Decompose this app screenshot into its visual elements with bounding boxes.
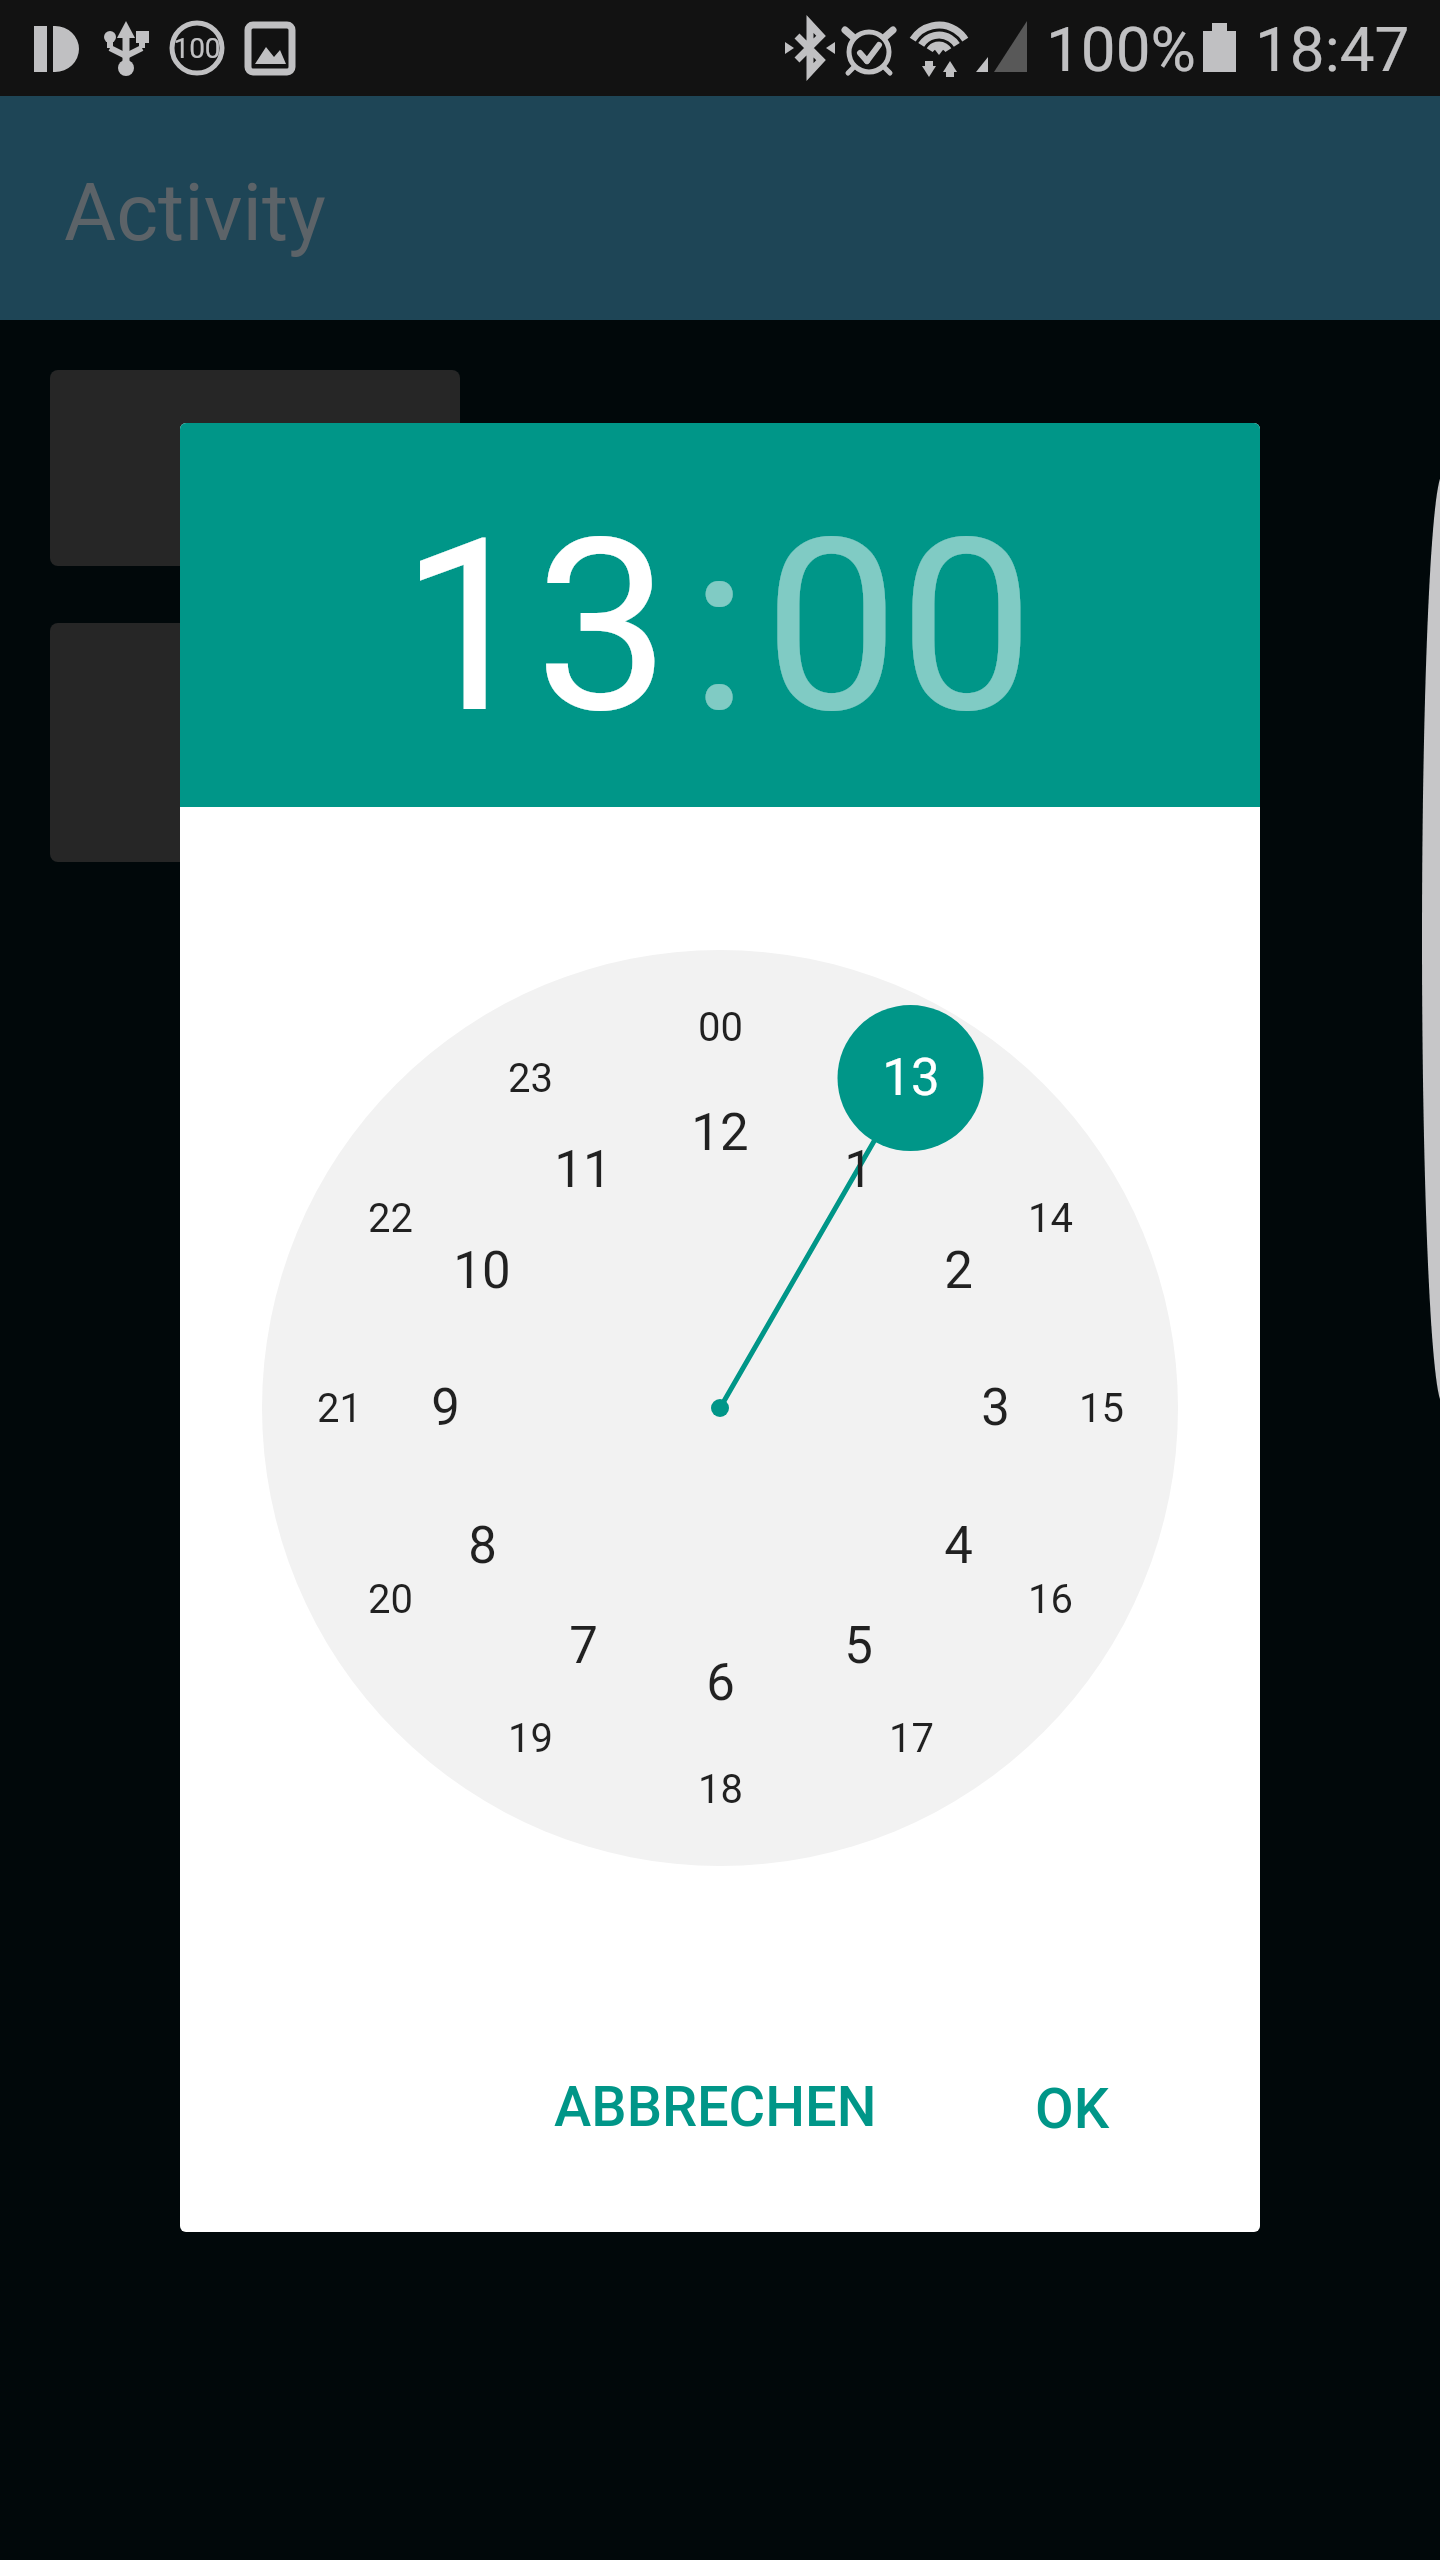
- button[interactable]: 7: [513, 1601, 653, 1691]
- staticText: OK: [1035, 2076, 1109, 2142]
- staticText: 18:47: [1255, 13, 1410, 86]
- staticText: :: [690, 486, 749, 767]
- button[interactable]: 00: [764, 486, 1034, 767]
- staticText: 6: [706, 1653, 735, 1713]
- staticText: 13: [882, 1048, 940, 1108]
- staticText: 00: [698, 1004, 743, 1051]
- staticText: 16: [1028, 1576, 1073, 1623]
- button[interactable]: 17: [841, 1693, 981, 1783]
- button[interactable]: 20: [320, 1554, 460, 1644]
- button[interactable]: ABBRECHEN: [526, 2059, 905, 2155]
- button[interactable]: 8: [412, 1501, 552, 1591]
- button[interactable]: 21: [269, 1363, 409, 1453]
- staticText: ABBRECHEN: [554, 2074, 877, 2140]
- staticText: 21: [317, 1385, 362, 1432]
- staticText: Activity: [64, 166, 326, 260]
- staticText: 100: [173, 32, 221, 65]
- staticText: 2: [944, 1241, 973, 1301]
- button[interactable]: OK: [1007, 2061, 1137, 2157]
- button[interactable]: 00: [650, 982, 790, 1072]
- button[interactable]: 4: [888, 1501, 1028, 1591]
- staticText: 1: [844, 1140, 873, 1200]
- button[interactable]: 14: [980, 1173, 1120, 1263]
- staticText: 9: [431, 1378, 460, 1438]
- staticText: 5: [844, 1616, 873, 1676]
- staticText: 7: [569, 1616, 598, 1676]
- staticText: 19: [508, 1715, 553, 1762]
- other: Scroll indicator: [1380, 470, 1440, 1410]
- staticText: 14: [1028, 1195, 1073, 1242]
- button[interactable]: [50, 370, 460, 566]
- staticText: 12: [691, 1103, 749, 1163]
- button[interactable]: 19: [460, 1693, 600, 1783]
- button[interactable]: [50, 623, 460, 862]
- button[interactable]: 18: [650, 1744, 790, 1834]
- button[interactable]: 16: [980, 1554, 1120, 1644]
- button[interactable]: 22: [320, 1173, 460, 1263]
- staticText: 100%: [1046, 13, 1196, 86]
- staticText: 4: [944, 1516, 973, 1576]
- button[interactable]: 6: [650, 1638, 790, 1728]
- staticText: 11: [554, 1140, 612, 1200]
- staticText: 17: [889, 1715, 934, 1762]
- staticText: 3: [981, 1378, 1010, 1438]
- staticText: 20: [368, 1576, 413, 1623]
- staticText: 8: [468, 1516, 497, 1576]
- staticText: 10: [453, 1241, 511, 1301]
- button[interactable]: 2: [888, 1226, 1028, 1316]
- button[interactable]: 12: [650, 1088, 790, 1178]
- staticText: 22: [368, 1195, 413, 1242]
- button[interactable]: 13: [400, 486, 670, 767]
- staticText: 15: [1079, 1385, 1124, 1432]
- button[interactable]: 23: [460, 1033, 600, 1123]
- staticText: 23: [508, 1055, 553, 1102]
- staticText: 18: [698, 1766, 743, 1813]
- button[interactable]: 11: [513, 1125, 653, 1215]
- button[interactable]: 10: [412, 1226, 552, 1316]
- button[interactable]: 1: [788, 1125, 928, 1215]
- button[interactable]: 3: [925, 1363, 1065, 1453]
- button[interactable]: 13: [841, 1033, 981, 1123]
- button[interactable]: 15: [1031, 1363, 1171, 1453]
- button[interactable]: 9: [375, 1363, 515, 1453]
- button[interactable]: 5: [788, 1601, 928, 1691]
